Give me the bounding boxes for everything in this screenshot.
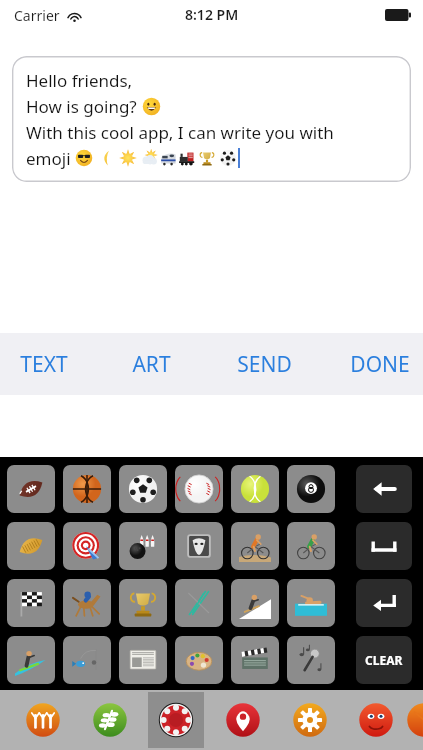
button[interactable]: Emoji key	[119, 522, 167, 570]
button[interactable]: Emoji key	[231, 636, 279, 684]
button[interactable]: Category 3	[148, 692, 204, 748]
button[interactable]: CLEAR	[356, 636, 412, 684]
button[interactable]: Emoji key	[231, 579, 279, 627]
button[interactable]: Emoji key	[7, 465, 55, 513]
button[interactable]: Category 1	[15, 692, 71, 748]
button[interactable]: Hello friends,	[12, 56, 411, 182]
button[interactable]: Space	[356, 522, 412, 570]
button[interactable]: Emoji key	[119, 579, 167, 627]
button[interactable]: Emoji key	[287, 522, 335, 570]
button[interactable]: Category 2	[82, 692, 138, 748]
button[interactable]: Backspace	[356, 465, 412, 513]
staticText: SEND	[237, 350, 292, 379]
button[interactable]: Emoji key	[287, 465, 335, 513]
button[interactable]: Emoji key	[287, 579, 335, 627]
staticText: ART	[132, 350, 171, 379]
staticText: 8:12 PM	[185, 5, 239, 24]
button[interactable]: Emoji key	[119, 636, 167, 684]
button[interactable]: DONE	[337, 341, 422, 387]
button[interactable]: Emoji key	[7, 522, 55, 570]
button[interactable]: Emoji key	[175, 579, 223, 627]
staticText: How is going?	[26, 95, 142, 118]
staticText: With this cool app, I can write you with	[26, 121, 334, 144]
button[interactable]: TEXT	[1, 341, 86, 387]
button[interactable]: Emoji key	[175, 465, 223, 513]
button[interactable]: Category 6	[348, 692, 404, 748]
staticText: Hello friends,	[26, 69, 133, 92]
button[interactable]: Emoji key	[63, 579, 111, 627]
button[interactable]: Emoji key	[63, 636, 111, 684]
button[interactable]: Category 5	[282, 692, 338, 748]
staticText: emoji	[26, 147, 75, 170]
button[interactable]: Emoji key	[119, 465, 167, 513]
button[interactable]: Emoji key	[7, 579, 55, 627]
button[interactable]: Emoji key	[231, 522, 279, 570]
staticText: TEXT	[20, 350, 68, 379]
staticText: DONE	[350, 350, 410, 379]
staticText: CLEAR	[365, 652, 403, 668]
button[interactable]: Category 7	[396, 692, 423, 748]
staticText: Carrier	[14, 6, 60, 25]
button[interactable]: Emoji key	[63, 465, 111, 513]
button[interactable]: SEND	[222, 341, 307, 387]
button[interactable]: Emoji key	[175, 522, 223, 570]
button[interactable]: Return	[356, 579, 412, 627]
button[interactable]: Category 4	[215, 692, 271, 748]
button[interactable]: Emoji key	[287, 636, 335, 684]
button[interactable]: Emoji key	[63, 522, 111, 570]
button[interactable]: Emoji key	[175, 636, 223, 684]
button[interactable]: Emoji key	[231, 465, 279, 513]
button[interactable]: ART	[109, 341, 194, 387]
button[interactable]: Emoji key	[7, 636, 55, 684]
